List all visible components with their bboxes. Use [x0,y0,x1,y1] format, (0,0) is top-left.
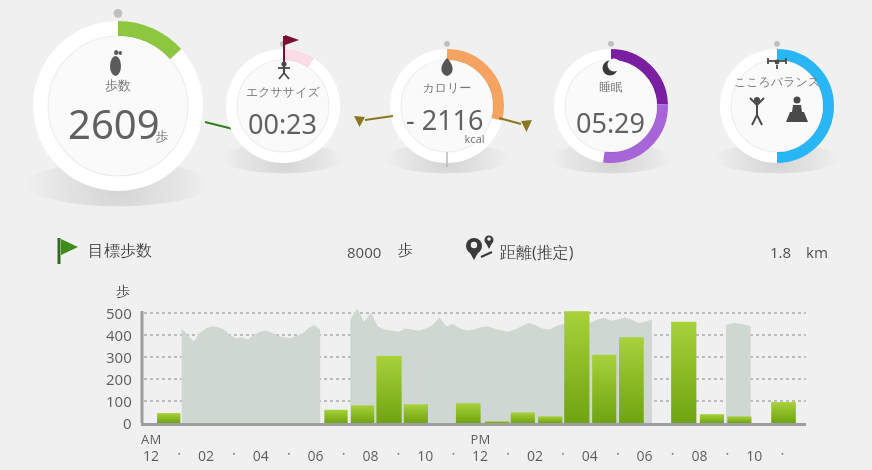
other: Activity dashboard [0,0,872,470]
button[interactable] [0,0,872,470]
